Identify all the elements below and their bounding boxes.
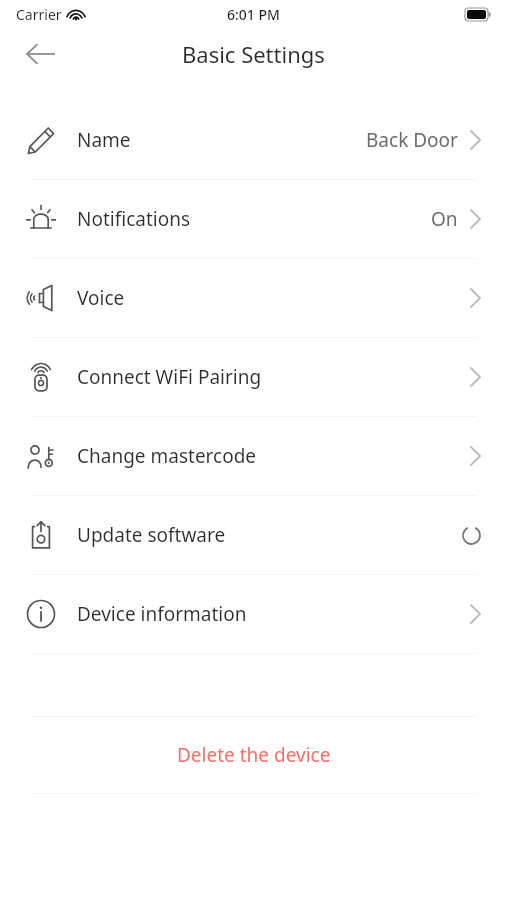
staticText: Voice — [77, 285, 125, 311]
staticText: Connect WiFi Pairing — [77, 364, 262, 390]
button[interactable]: Connect WiFi Pairing — [0, 338, 507, 416]
staticText: On — [431, 206, 458, 232]
staticText: Name — [77, 127, 131, 153]
staticText: Basic Settings — [182, 39, 325, 69]
button[interactable]: Back — [14, 28, 68, 80]
button[interactable]: Voice — [0, 259, 507, 337]
button[interactable]: Notifications — [0, 180, 507, 258]
staticText: Delete the device — [177, 742, 331, 768]
button[interactable]: Update software — [0, 496, 507, 574]
button[interactable]: Delete the device — [0, 717, 507, 793]
button[interactable]: Device information — [0, 575, 507, 653]
button[interactable]: Name — [0, 101, 507, 179]
button[interactable]: Change mastercode — [0, 417, 507, 495]
staticText: Change mastercode — [77, 443, 257, 469]
staticText: Notifications — [77, 206, 191, 232]
staticText: Carrier — [16, 5, 62, 24]
staticText: Update software — [77, 522, 226, 548]
staticText: 6:01 PM — [227, 5, 280, 24]
staticText: Back Door — [366, 127, 458, 153]
staticText: Device information — [77, 601, 247, 627]
